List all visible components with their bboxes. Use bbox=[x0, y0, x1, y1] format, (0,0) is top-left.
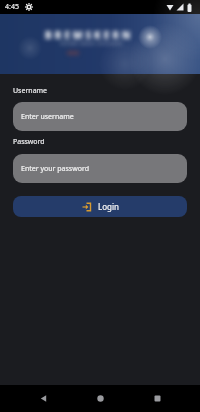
button[interactable]: Enter your password bbox=[13, 154, 187, 183]
staticText: BREMSKERN bbox=[45, 28, 134, 42]
staticText: Username bbox=[13, 86, 48, 96]
button[interactable]: Login bbox=[13, 196, 187, 217]
button[interactable] bbox=[30, 385, 57, 412]
button[interactable] bbox=[87, 385, 114, 412]
staticText: 4:45 bbox=[5, 2, 19, 12]
staticText: Login bbox=[98, 201, 119, 212]
staticText: Enter your password bbox=[21, 164, 89, 174]
staticText: sssaas asaas assaaasa bbox=[60, 40, 123, 47]
button[interactable] bbox=[144, 385, 171, 412]
button[interactable]: Enter username bbox=[13, 102, 187, 131]
staticText: Password bbox=[13, 137, 45, 147]
staticText: Enter username bbox=[21, 112, 74, 122]
